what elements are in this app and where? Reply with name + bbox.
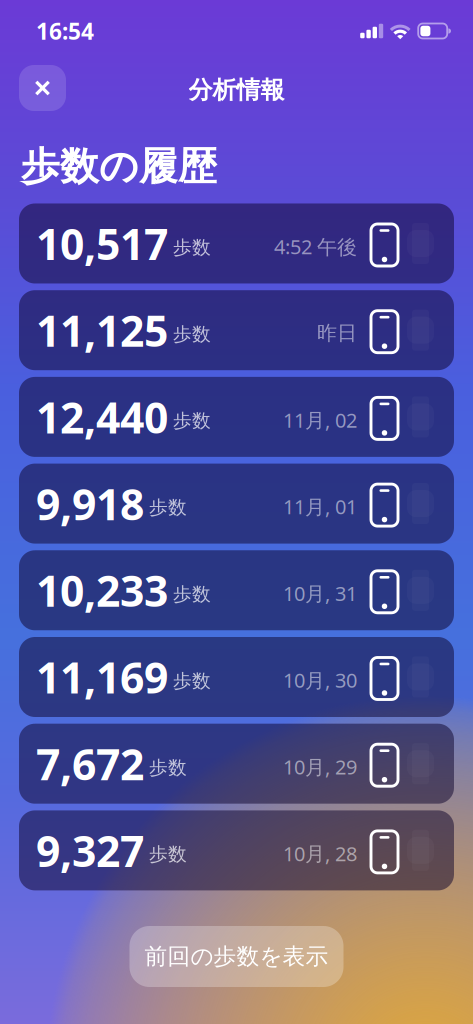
button[interactable]: 7,672 bbox=[19, 724, 454, 804]
staticText: 歩数 bbox=[173, 669, 211, 692]
staticText: 前回の歩数を表示 bbox=[144, 943, 328, 970]
staticText: 16:54 bbox=[36, 16, 94, 46]
staticText: 9,918 bbox=[36, 475, 144, 532]
staticText: 11月, 02 bbox=[283, 407, 357, 433]
button[interactable]: 12,440 bbox=[19, 377, 454, 457]
staticText: 11,169 bbox=[36, 649, 168, 705]
button[interactable]: 閉じる bbox=[19, 65, 66, 111]
staticText: 歩数 bbox=[149, 756, 187, 779]
staticText: 12,440 bbox=[36, 389, 168, 445]
staticText: 歩数 bbox=[173, 409, 211, 432]
staticText: 11月, 01 bbox=[283, 493, 357, 520]
staticText: 歩数の履歴 bbox=[21, 143, 217, 190]
staticText: 10月, 29 bbox=[283, 753, 357, 780]
staticText: 11,125 bbox=[36, 302, 168, 359]
staticText: 歩数 bbox=[173, 236, 211, 259]
staticText: 10月, 28 bbox=[283, 840, 357, 867]
button[interactable]: 9,327 bbox=[19, 810, 454, 890]
staticText: 10,233 bbox=[36, 562, 168, 619]
staticText: 分析情報 bbox=[188, 75, 284, 105]
button[interactable]: 9,918 bbox=[19, 464, 454, 544]
staticText: 10,517 bbox=[36, 215, 168, 272]
staticText: 歩数 bbox=[149, 843, 187, 866]
staticText: 歩数 bbox=[149, 496, 187, 519]
staticText: 昨日 bbox=[317, 321, 357, 345]
staticText: 9,327 bbox=[36, 822, 144, 879]
button[interactable]: 10,233 bbox=[19, 550, 454, 630]
button[interactable]: 10,517 bbox=[19, 203, 454, 283]
button[interactable]: 11,125 bbox=[19, 290, 454, 370]
button[interactable]: 11,169 bbox=[19, 637, 454, 717]
staticText: 歩数 bbox=[173, 583, 211, 606]
staticText: 歩数 bbox=[173, 323, 211, 346]
staticText: 7,672 bbox=[36, 735, 144, 792]
staticText: 4:52 午後 bbox=[274, 233, 357, 260]
button[interactable]: 前回の歩数を表示 bbox=[129, 926, 343, 987]
staticText: 10月, 30 bbox=[283, 667, 357, 693]
staticText: 10月, 31 bbox=[283, 580, 357, 607]
